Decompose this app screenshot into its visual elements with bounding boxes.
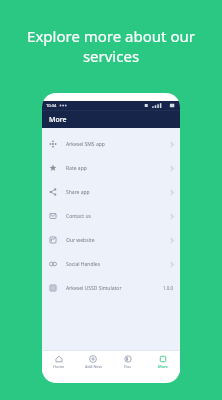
staticText: Arkesel SMS app [66, 141, 105, 148]
button[interactable]: Add New [76, 351, 110, 373]
staticText: Our website [66, 237, 95, 244]
staticText: 1.0.0 [163, 285, 174, 291]
button[interactable]: Rate app [42, 156, 180, 180]
staticText: Explore more about our services [14, 26, 208, 66]
staticText: Arkesel USSD Simulator [66, 285, 122, 292]
button[interactable]: More [145, 351, 180, 373]
staticText: Share app [66, 189, 90, 196]
staticText: More [158, 364, 168, 369]
staticText: Doc [124, 364, 132, 369]
staticText: Home [53, 364, 65, 369]
staticText: Social Handles [66, 261, 101, 268]
button[interactable]: Arkesel SMS app [42, 132, 180, 156]
button[interactable]: Arkesel USSD Simulator [42, 276, 180, 300]
staticText: Rate app [66, 165, 87, 172]
staticText: More [49, 115, 67, 125]
button[interactable]: Share app [42, 180, 180, 204]
button[interactable]: Social Handles [42, 252, 180, 276]
staticText: Add New [85, 364, 102, 369]
staticText: 10:34 [46, 103, 57, 108]
button[interactable]: Contact us [42, 204, 180, 228]
button[interactable]: Doc [110, 351, 145, 373]
button[interactable]: Home [42, 351, 76, 373]
staticText: Contact us [66, 213, 91, 220]
button[interactable]: Our website [42, 228, 180, 252]
